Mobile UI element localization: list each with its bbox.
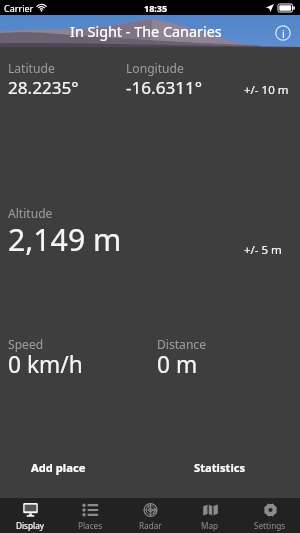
button[interactable]: Statistics bbox=[184, 453, 255, 481]
staticText: Longitude bbox=[126, 60, 184, 76]
staticText: Altitude bbox=[8, 205, 53, 221]
staticText: 0 km/h bbox=[8, 349, 83, 380]
button[interactable]: Info bbox=[275, 25, 291, 41]
staticText: i bbox=[282, 26, 285, 41]
staticText: Carrier bbox=[4, 2, 34, 14]
button[interactable]: Display bbox=[0, 498, 60, 533]
staticText: In Sight - The Canaries bbox=[70, 22, 222, 42]
button[interactable]: Settings bbox=[240, 498, 300, 533]
staticText: Map bbox=[201, 520, 219, 531]
staticText: 18:35 bbox=[144, 2, 168, 14]
staticText: +/- 10 m bbox=[244, 82, 289, 98]
staticText: Settings bbox=[254, 520, 286, 531]
staticText: Speed bbox=[8, 336, 44, 352]
button[interactable]: Places bbox=[60, 498, 120, 533]
staticText: Radar bbox=[139, 520, 162, 531]
staticText: 0 m bbox=[157, 349, 198, 380]
staticText: 28.2235° bbox=[8, 76, 79, 99]
staticText: +/- 5 m bbox=[244, 242, 282, 258]
button[interactable]: Map bbox=[180, 498, 240, 533]
staticText: Add place bbox=[31, 460, 86, 475]
staticText: Latitude bbox=[8, 60, 55, 76]
staticText: 2,149 m bbox=[8, 219, 122, 260]
staticText: Places bbox=[78, 520, 103, 531]
staticText: Distance bbox=[157, 336, 206, 352]
button[interactable]: Radar bbox=[120, 498, 180, 533]
staticText: Display bbox=[16, 520, 44, 531]
staticText: -16.6311° bbox=[126, 76, 203, 99]
staticText: Statistics bbox=[194, 460, 246, 475]
button[interactable]: Add place bbox=[22, 453, 95, 481]
